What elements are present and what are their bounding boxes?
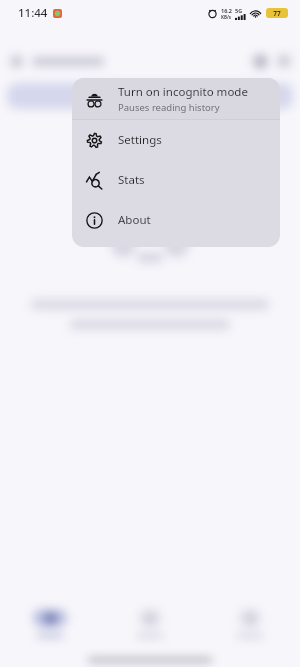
button[interactable]	[0, 609, 100, 639]
staticText: Turn on incognito mode	[118, 84, 248, 100]
staticText: Pauses reading history	[118, 101, 220, 114]
staticText: 16.2	[221, 7, 232, 14]
button[interactable]	[100, 609, 200, 639]
other: Wi-Fi	[250, 9, 261, 18]
staticText: Stats	[118, 172, 145, 188]
button[interactable]: About	[72, 200, 280, 240]
staticText: About	[118, 212, 151, 228]
button[interactable]: Stats	[72, 160, 280, 200]
staticText: Settings	[118, 132, 162, 148]
button[interactable]: Turn on incognito mode	[72, 78, 280, 119]
other: Alarm	[208, 9, 217, 18]
button[interactable]	[200, 609, 300, 639]
button[interactable]: Settings	[72, 120, 280, 160]
staticText: 5G	[235, 7, 243, 14]
staticText: 77	[273, 9, 281, 18]
staticText: 11:44	[18, 5, 48, 21]
staticText: KB/s	[221, 14, 232, 20]
